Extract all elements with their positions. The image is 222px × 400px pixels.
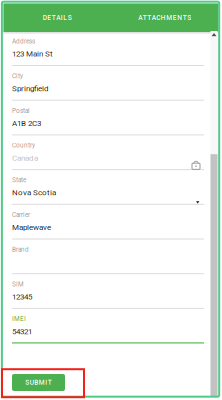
staticText: City [12,72,23,80]
button[interactable]: City [12,66,204,101]
staticText: DETAILS [43,14,72,22]
button[interactable]: Brand [12,239,204,274]
staticText: Postal [12,107,30,114]
button[interactable]: SUBMIT [12,374,65,391]
button[interactable]: Country [12,135,204,170]
button[interactable]: State [12,170,204,205]
staticText: Address [12,38,35,45]
staticText: SIM [12,280,24,288]
staticText: Nova Scotia [12,188,56,197]
staticText: Canada [12,153,38,163]
staticText: Brand [12,246,29,253]
button[interactable]: Address [12,31,204,66]
staticText: 54321 [12,327,32,336]
staticText: 12345 [12,292,32,301]
staticText: Country [12,142,35,149]
staticText: Maplewave [12,223,51,232]
staticText: A1B 2C3 [12,118,41,128]
staticText: Carrier [12,211,30,219]
button[interactable]: SIM [12,274,204,309]
button[interactable]: DETAILS [3,3,111,32]
staticText: 123 Main St [12,49,53,58]
staticText: IMEI [12,315,26,323]
button[interactable]: Postal [12,101,204,135]
staticText: Springfield [12,84,49,93]
button[interactable]: Carrier [12,205,204,239]
staticText: SUBMIT [25,379,52,386]
staticText: ATTACHMENTS [138,14,191,22]
button[interactable]: ATTACHMENTS [111,3,218,32]
staticText: State [12,176,26,184]
button[interactable]: IMEI [12,309,204,344]
